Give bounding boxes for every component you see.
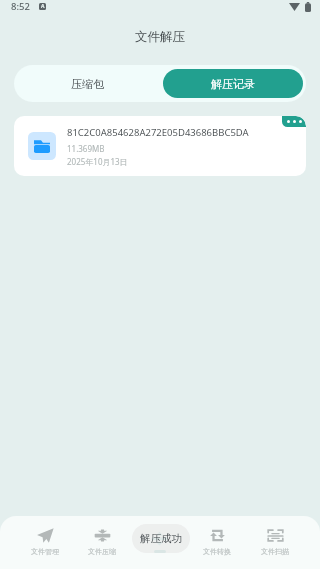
staticText: 解压成功 xyxy=(140,532,182,545)
button[interactable]: 压缩包 xyxy=(14,65,160,102)
staticText: 文件压缩 xyxy=(88,547,116,556)
staticText: 文件管理 xyxy=(31,547,59,556)
staticText: 压缩包 xyxy=(71,77,104,91)
staticText: 11.369MB xyxy=(67,143,105,154)
staticText: 8:52 xyxy=(11,0,30,13)
staticText: 解压记录 xyxy=(211,77,255,91)
button[interactable]: 文件转换 xyxy=(188,516,246,569)
button[interactable]: 文件压缩 xyxy=(73,516,130,569)
button[interactable]: 文件管理 xyxy=(16,516,73,569)
button[interactable]: 解压记录 xyxy=(163,69,303,98)
button[interactable]: 文件扫描 xyxy=(246,516,304,569)
button[interactable]: 81C2C0A854628A272E05D43686BBC5DA xyxy=(14,116,306,176)
button[interactable]: More options xyxy=(282,116,306,127)
staticText: 文件扫描 xyxy=(261,547,289,556)
staticText: A xyxy=(41,3,45,10)
staticText: 文件解压 xyxy=(135,29,185,45)
staticText: 文件转换 xyxy=(203,547,231,556)
button[interactable] xyxy=(130,516,188,569)
staticText: 2025年10月13日 xyxy=(67,156,128,167)
staticText: 81C2C0A854628A272E05D43686BBC5DA xyxy=(67,126,249,139)
